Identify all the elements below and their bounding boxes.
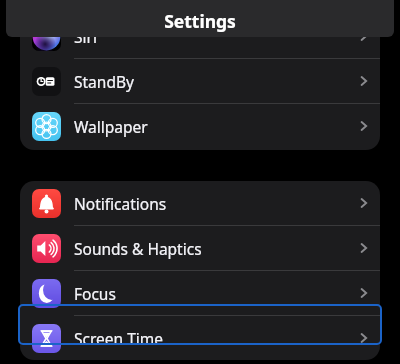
button[interactable]: Sounds & Haptics bbox=[20, 226, 380, 270]
staticText: Settings bbox=[164, 9, 236, 33]
staticText: Focus bbox=[74, 283, 116, 304]
staticText: Screen Time bbox=[74, 328, 163, 349]
button[interactable]: Wallpaper bbox=[20, 104, 380, 148]
button[interactable]: Screen Time bbox=[20, 316, 380, 360]
button[interactable]: StandBy bbox=[20, 59, 380, 103]
staticText: Siri bbox=[74, 26, 97, 47]
staticText: Sounds & Haptics bbox=[74, 238, 202, 259]
button[interactable]: Siri bbox=[20, 14, 380, 58]
button[interactable]: Focus bbox=[20, 271, 380, 315]
button[interactable]: Notifications bbox=[20, 181, 380, 225]
staticText: Notifications bbox=[74, 193, 167, 214]
staticText: StandBy bbox=[74, 71, 134, 92]
staticText: Wallpaper bbox=[74, 116, 148, 137]
